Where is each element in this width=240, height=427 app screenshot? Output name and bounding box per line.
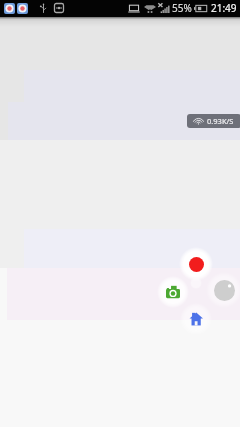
button[interactable]: Record (189, 257, 204, 272)
staticText: 0.93K/S (207, 116, 234, 126)
button[interactable]: Network speed (187, 114, 240, 128)
button[interactable]: Assistive touch (214, 280, 235, 301)
button[interactable]: Screenshot (166, 285, 180, 299)
staticText: 21:49 (211, 1, 237, 15)
button[interactable]: Home (189, 312, 203, 326)
staticText: 55% (172, 1, 192, 15)
